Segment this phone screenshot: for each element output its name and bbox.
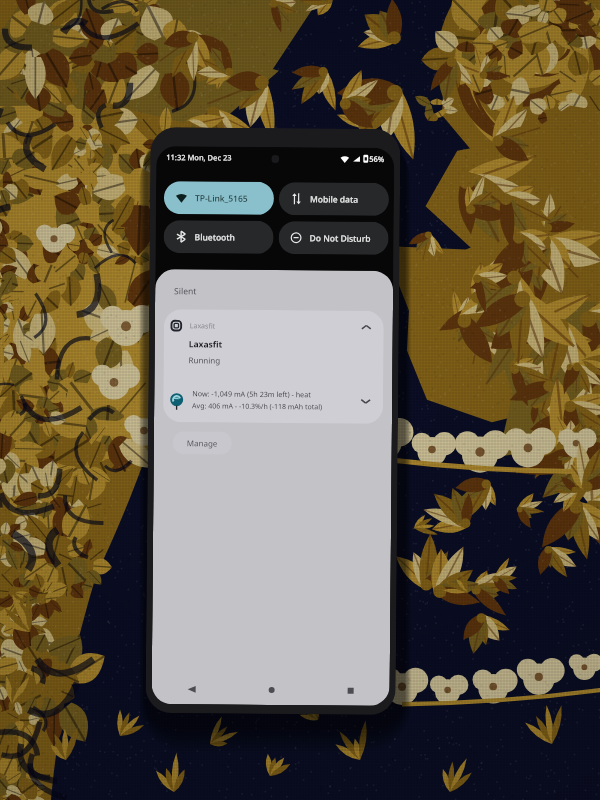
button[interactable]: Now: -1,049 mA (5h 23m left) - heat bbox=[163, 381, 383, 420]
staticText: Do Not Disturb bbox=[309, 232, 371, 245]
other: Collapse bbox=[360, 321, 373, 334]
button[interactable]: Do Not Disturb bbox=[278, 221, 389, 255]
staticText: Running bbox=[188, 354, 221, 366]
staticText: 56% bbox=[369, 154, 384, 164]
staticText: 11:32 Mon, Dec 23 bbox=[166, 152, 232, 163]
other: Expand bbox=[359, 395, 372, 408]
staticText: Laxasfit bbox=[190, 321, 216, 331]
staticText: Laxasfit bbox=[189, 338, 223, 351]
staticText: Now: -1,049 mA (5h 23m left) - heat bbox=[192, 388, 311, 399]
button[interactable]: Mobile data bbox=[279, 182, 389, 216]
staticText: TP-Link_5165 bbox=[195, 192, 248, 205]
button[interactable]: Laxasfit bbox=[163, 309, 384, 383]
staticText: Mobile data bbox=[310, 193, 359, 206]
button[interactable]: TP-Link_5165 bbox=[164, 181, 274, 215]
button[interactable]: Manage bbox=[173, 431, 232, 455]
staticText: Bluetooth bbox=[194, 231, 236, 244]
button[interactable]: Back bbox=[181, 678, 203, 700]
button[interactable]: Recents bbox=[340, 680, 362, 702]
button[interactable]: Bluetooth bbox=[163, 220, 274, 254]
staticText: Silent bbox=[174, 285, 197, 297]
staticText: Manage bbox=[187, 437, 218, 448]
staticText: Avg: 406 mA - -10.3%/h (-118 mAh total) bbox=[192, 401, 322, 412]
button[interactable]: Home bbox=[261, 679, 283, 701]
